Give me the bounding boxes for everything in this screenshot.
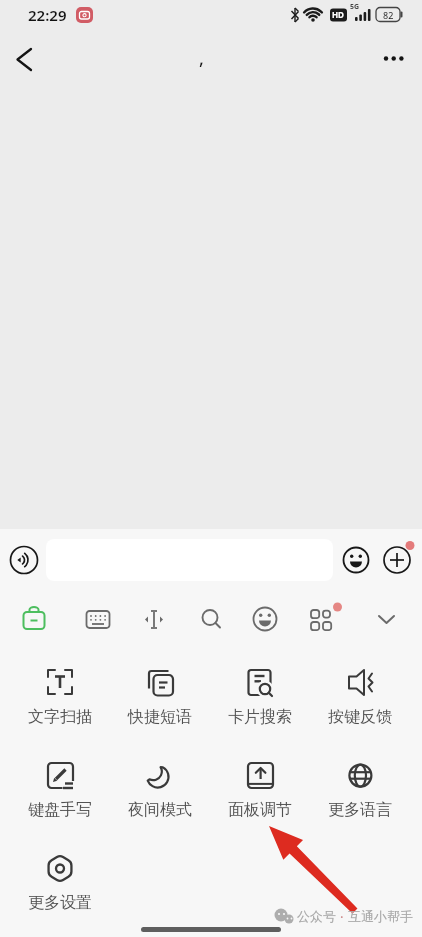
- button[interactable]: [304, 602, 338, 636]
- button[interactable]: 面板调节: [210, 759, 310, 820]
- staticText: 互通小帮手: [348, 908, 413, 924]
- button[interactable]: [9, 545, 39, 575]
- staticText: 5G: [350, 2, 360, 12]
- button[interactable]: 快捷短语: [110, 666, 210, 727]
- staticText: 文字扫描: [28, 707, 92, 727]
- button[interactable]: [17, 602, 51, 636]
- button[interactable]: 更多设置: [10, 852, 110, 913]
- staticText: 键盘手写: [28, 800, 92, 820]
- button[interactable]: [248, 602, 282, 636]
- staticText: ,: [199, 46, 204, 71]
- staticText: ·: [340, 908, 344, 926]
- button[interactable]: 卡片搜索: [210, 666, 310, 727]
- staticText: 22:29: [28, 5, 67, 25]
- staticText: HD: [332, 9, 344, 20]
- staticText: 更多语言: [328, 800, 392, 820]
- button[interactable]: [370, 602, 404, 636]
- button[interactable]: 文字扫描: [10, 666, 110, 727]
- staticText: 按键反馈: [328, 707, 392, 727]
- staticText: 卡片搜索: [228, 707, 292, 727]
- button[interactable]: 夜间模式: [110, 759, 210, 820]
- button[interactable]: [137, 602, 171, 636]
- staticText: 快捷短语: [128, 707, 192, 727]
- button[interactable]: 按键反馈: [310, 666, 410, 727]
- button[interactable]: [383, 546, 412, 575]
- staticText: 82: [383, 9, 394, 21]
- button[interactable]: [376, 42, 412, 76]
- button[interactable]: 键盘手写: [10, 759, 110, 820]
- button[interactable]: [6, 42, 42, 78]
- staticText: 面板调节: [228, 800, 292, 820]
- staticText: 更多设置: [28, 893, 92, 913]
- button[interactable]: 更多语言: [310, 759, 410, 820]
- staticText: 公众号: [297, 908, 336, 924]
- button[interactable]: [194, 602, 228, 636]
- button[interactable]: [341, 545, 371, 575]
- button[interactable]: [81, 602, 115, 636]
- staticText: 夜间模式: [128, 800, 192, 820]
